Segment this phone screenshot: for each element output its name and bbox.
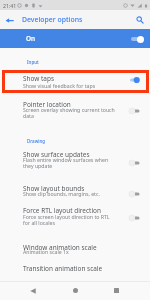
staticText: On <box>26 34 36 43</box>
staticText: Flash entire window surfaces when they u… <box>23 156 115 169</box>
button[interactable] <box>0 260 150 280</box>
button[interactable]: Back <box>21 281 45 300</box>
staticText: Animation scale 1x <box>23 248 115 255</box>
staticText: Pointer location <box>23 100 118 109</box>
button[interactable] <box>0 202 150 232</box>
staticText: Transition animation scale <box>23 264 118 273</box>
staticText: Show taps <box>23 74 118 83</box>
staticText: Screen overlay showing current touch dat… <box>23 106 115 119</box>
staticText: Force screen layout direction to RTL for… <box>23 213 115 226</box>
staticText: Show visual feedback for taps <box>23 82 115 89</box>
staticText: Show clip bounds, margins, etc. <box>23 190 115 197</box>
staticText: Developer options <box>22 15 83 24</box>
staticText: Show layout bounds <box>23 184 118 193</box>
staticText: Window animation scale <box>23 243 118 252</box>
button[interactable] <box>0 178 150 200</box>
button[interactable] <box>0 238 150 258</box>
staticText: Input <box>27 59 39 65</box>
button[interactable]: Home <box>63 281 87 300</box>
staticText: Drawing <box>27 138 46 144</box>
button[interactable] <box>0 70 150 93</box>
staticText: Force RTL layout direction <box>23 206 118 215</box>
staticText: 21:41 <box>3 2 17 9</box>
button[interactable]: Navigate up <box>0 11 18 29</box>
button[interactable]: On <box>0 29 150 48</box>
button[interactable]: Recent apps <box>104 281 128 300</box>
button[interactable] <box>0 94 150 122</box>
staticText: Show surface updates <box>23 150 118 159</box>
button[interactable] <box>0 146 150 176</box>
button[interactable]: Search <box>133 13 147 27</box>
